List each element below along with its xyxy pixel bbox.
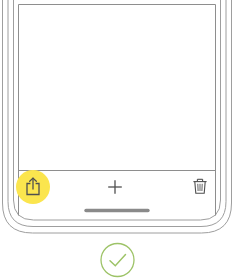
button[interactable]: Share <box>16 170 50 204</box>
button[interactable]: Add <box>103 175 127 199</box>
button[interactable]: Delete <box>188 175 212 199</box>
